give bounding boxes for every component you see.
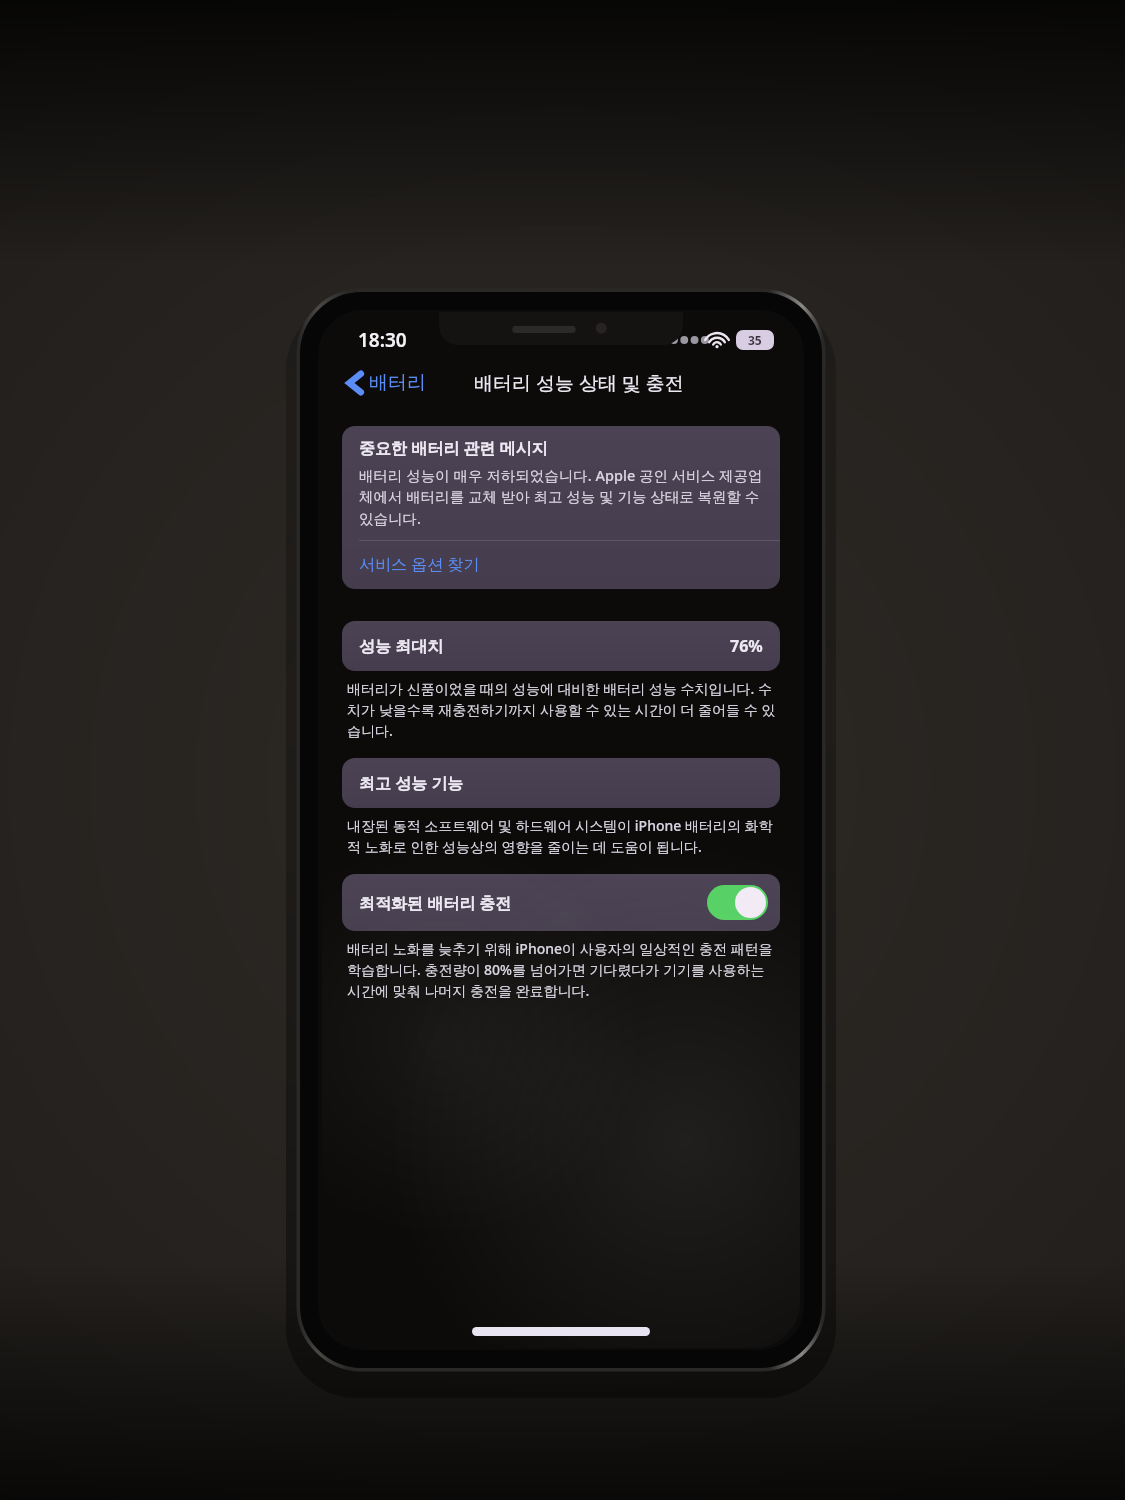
staticText: 배터리가 신품이었을 때의 성능에 대비한 배터리 성능 수치입니다. 수치가 … bbox=[347, 679, 778, 740]
staticText: 18:30 bbox=[358, 327, 407, 353]
staticText: 배터리 성능이 매우 저하되었습니다. Apple 공인 서비스 제공업체에서 … bbox=[359, 465, 765, 529]
staticText: 배터리 노화를 늦추기 위해 iPhone이 사용자의 일상적인 충전 패턴을 … bbox=[347, 939, 778, 1000]
staticText: 성능 최대치 bbox=[359, 635, 444, 657]
staticText: 배터리 bbox=[369, 371, 426, 395]
staticText: 중요한 배터리 관련 메시지 bbox=[359, 437, 548, 459]
button[interactable]: 배터리 bbox=[342, 367, 432, 399]
button[interactable]: 서비스 옵션 찾기 bbox=[342, 541, 780, 589]
button[interactable]: 최적화된 배터리 충전 bbox=[342, 874, 780, 931]
staticText: 내장된 동적 소프트웨어 및 하드웨어 시스템이 iPhone 배터리의 화학적… bbox=[347, 816, 778, 856]
staticText: 35 bbox=[748, 332, 762, 348]
staticText: 최적화된 배터리 충전 bbox=[359, 892, 512, 914]
staticText: 76% bbox=[730, 635, 763, 657]
staticText: 서비스 옵션 찾기 bbox=[359, 553, 480, 575]
staticText: 최고 성능 기능 bbox=[359, 772, 464, 794]
button[interactable]: 최고 성능 기능 bbox=[342, 758, 780, 808]
staticText: 배터리 성능 상태 및 충전 bbox=[474, 370, 684, 396]
button[interactable]: 성능 최대치 bbox=[342, 621, 780, 671]
button[interactable]: 최적화된 배터리 충전 켬 bbox=[707, 885, 768, 920]
